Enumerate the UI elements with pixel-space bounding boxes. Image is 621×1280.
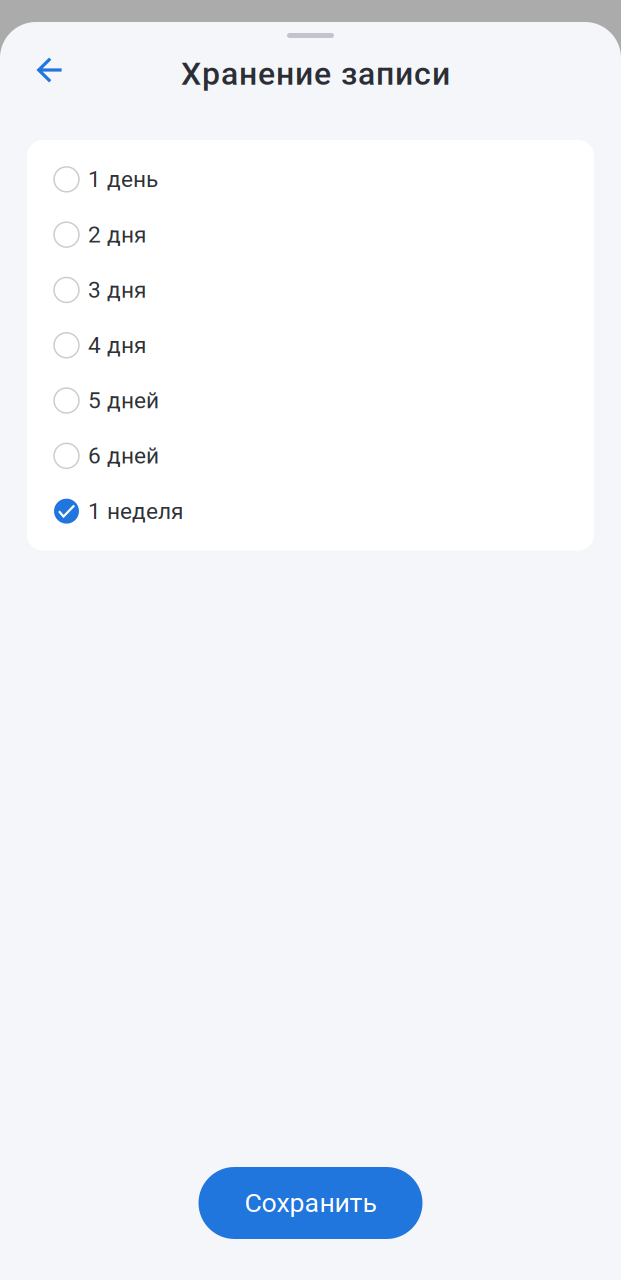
staticText: 3 дня — [88, 277, 146, 303]
staticText: 1 день — [88, 166, 158, 193]
staticText: 5 дней — [88, 387, 159, 414]
button[interactable]: 3 дня — [27, 262, 594, 318]
staticText: 4 дня — [88, 332, 146, 359]
button[interactable]: Сохранить — [198, 1167, 422, 1239]
button[interactable]: 1 день — [27, 152, 594, 207]
button[interactable]: 1 неделя — [27, 483, 594, 539]
button[interactable]: 5 дней — [27, 373, 594, 428]
button[interactable]: Назад — [0, 22, 77, 97]
staticText: Хранение записи — [181, 55, 450, 92]
staticText: Сохранить — [244, 1187, 376, 1219]
staticText: 1 неделя — [88, 498, 183, 524]
staticText: 2 дня — [88, 221, 146, 248]
button[interactable]: 6 дней — [27, 428, 594, 483]
button[interactable]: 2 дня — [27, 207, 594, 262]
button[interactable]: 4 дня — [27, 318, 594, 373]
staticText: 6 дней — [88, 443, 159, 469]
